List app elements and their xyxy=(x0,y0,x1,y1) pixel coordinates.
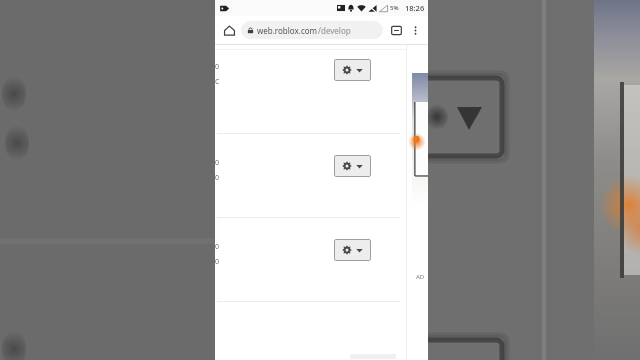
button[interactable]: Home xyxy=(219,20,239,40)
button[interactable]: Tabs xyxy=(386,20,406,40)
staticText: 0 xyxy=(215,173,220,183)
staticText: 5% xyxy=(390,4,399,12)
staticText: 0 xyxy=(215,62,220,72)
staticText: 0 xyxy=(215,257,220,267)
button[interactable]: web.roblox.com xyxy=(241,21,383,39)
button[interactable]: 0 xyxy=(215,50,406,133)
button[interactable]: Game settings xyxy=(334,239,371,261)
button[interactable]: 0 xyxy=(215,134,406,217)
staticText: AD xyxy=(416,273,425,281)
button[interactable]: Game settings xyxy=(334,155,371,177)
button[interactable]: More options xyxy=(406,21,424,39)
staticText: web.roblox.com xyxy=(257,25,318,36)
staticText: 18:26 xyxy=(405,3,425,13)
staticText: 0 xyxy=(215,242,220,252)
staticText: C xyxy=(215,77,220,87)
staticText: /develop xyxy=(318,25,351,36)
button[interactable]: Advertisement xyxy=(407,45,428,360)
button[interactable]: 0 xyxy=(215,218,406,301)
button[interactable]: Game settings xyxy=(334,59,371,81)
staticText: 0 xyxy=(215,158,220,168)
